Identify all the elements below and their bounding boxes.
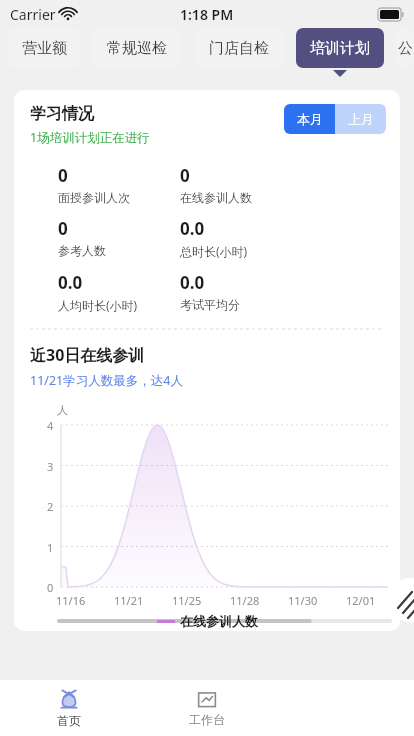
staticText: 4	[47, 418, 54, 433]
staticText: 0	[180, 164, 190, 187]
staticText: 考试平均分	[180, 297, 240, 312]
staticText: 近30日在线参训	[30, 344, 145, 366]
staticText: 12/01	[346, 593, 376, 608]
staticText: 总时长(小时)	[180, 243, 248, 259]
button[interactable]: 首页	[0, 680, 138, 736]
button[interactable]: 上月	[335, 104, 386, 134]
staticText: 1场培训计划正在进行	[30, 129, 150, 146]
button[interactable]: 工作台	[138, 680, 276, 736]
staticText: 人均时长(小时)	[58, 297, 138, 313]
staticText: 2	[47, 499, 54, 514]
staticText: 11/16	[56, 593, 86, 608]
staticText: 11/21学习人数最多，达4人	[30, 372, 183, 389]
staticText: 学习情况	[30, 104, 94, 124]
staticText: 0	[58, 217, 68, 240]
button[interactable]: 培训计划	[296, 28, 384, 68]
button[interactable]: 本月	[284, 104, 335, 134]
staticText: 人	[57, 403, 68, 417]
button[interactable]: 公	[396, 28, 414, 68]
staticText: 0	[47, 580, 54, 595]
staticText: 1:18 PM	[180, 5, 234, 24]
staticText: 在线参训人数	[180, 190, 252, 205]
staticText: 门店自检	[209, 39, 269, 58]
button[interactable]: 营业额	[8, 28, 80, 68]
staticText: Carrier	[10, 5, 56, 24]
staticText: 11/30	[288, 593, 318, 608]
staticText: 11/21	[114, 593, 144, 608]
staticText: 营业额	[22, 39, 67, 58]
staticText: 0.0	[180, 217, 205, 240]
staticText: 1	[47, 540, 54, 555]
staticText: 常规巡检	[107, 39, 167, 58]
staticText: 本月	[297, 111, 323, 127]
staticText: 培训计划	[310, 39, 370, 58]
button[interactable]: 常规巡检	[92, 28, 182, 68]
staticText: 在线参训人数	[180, 613, 258, 629]
staticText: 0.0	[180, 271, 205, 294]
button[interactable]: Quick action	[388, 578, 414, 622]
staticText: 11/25	[172, 593, 202, 608]
staticText: 0.0	[58, 271, 83, 294]
staticText: 公	[398, 39, 413, 58]
staticText: 参考人数	[58, 243, 106, 258]
staticText: 工作台	[189, 712, 225, 727]
staticText: 面授参训人次	[58, 190, 130, 205]
button[interactable]: 门店自检	[194, 28, 284, 68]
staticText: 11/28	[230, 593, 260, 608]
staticText: 上月	[348, 111, 374, 127]
staticText: 首页	[57, 713, 81, 728]
staticText: 3	[47, 459, 54, 474]
staticText: 0	[58, 164, 68, 187]
